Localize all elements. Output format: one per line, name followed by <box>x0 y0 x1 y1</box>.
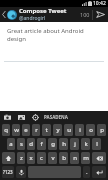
staticText: i <box>79 126 81 134</box>
button[interactable]: p <box>97 124 106 136</box>
button[interactable]: Backspace <box>92 152 106 164</box>
button[interactable]: g <box>48 138 57 150</box>
staticText: . <box>86 168 88 176</box>
staticText: c <box>40 154 43 162</box>
button[interactable]: o <box>86 124 95 136</box>
staticText: Compose Tweet <box>19 7 67 15</box>
button[interactable]: Attach photo <box>3 113 12 122</box>
button[interactable]: i <box>75 124 84 136</box>
button[interactable]: Shift <box>2 152 15 164</box>
button[interactable]: b <box>59 152 68 164</box>
staticText: t <box>45 126 48 134</box>
button[interactable]: c <box>37 152 46 164</box>
button[interactable]: t <box>42 124 51 136</box>
button[interactable]: . <box>83 166 90 178</box>
staticText: a <box>9 140 13 148</box>
button[interactable]: Add image <box>17 113 26 122</box>
button[interactable]: y <box>53 124 62 136</box>
staticText: Great article about Android design <box>7 27 103 43</box>
button[interactable]: m <box>81 152 90 164</box>
staticText: k <box>84 140 88 148</box>
staticText: y <box>56 126 60 134</box>
button[interactable]: r <box>32 124 40 136</box>
staticText: 10:42 <box>93 0 106 7</box>
staticText: o <box>89 126 93 134</box>
button[interactable]: Add location <box>31 113 40 122</box>
staticText: @androgirl <box>19 15 46 22</box>
button[interactable]: e <box>22 124 30 136</box>
button[interactable]: v <box>48 152 57 164</box>
button[interactable]: j <box>70 138 79 150</box>
button[interactable]: a <box>7 138 15 150</box>
staticText: q <box>4 126 8 134</box>
button[interactable]: s <box>17 138 25 150</box>
staticText: l <box>96 140 98 148</box>
button[interactable]: k <box>81 138 90 150</box>
staticText: b <box>62 154 66 162</box>
staticText: u <box>67 126 71 134</box>
staticText: x <box>29 154 33 162</box>
button[interactable]: z <box>17 152 25 164</box>
button[interactable]: l <box>92 138 101 150</box>
staticText: j <box>74 140 76 148</box>
button[interactable]: ?123 <box>2 166 14 178</box>
staticText: v <box>51 154 55 162</box>
staticText: r <box>35 126 38 134</box>
button[interactable]: Voice input <box>16 166 26 178</box>
button[interactable]: w <box>12 124 20 136</box>
staticText: g <box>51 140 55 148</box>
staticText: w <box>14 126 19 134</box>
staticText: m <box>83 154 89 162</box>
button[interactable]: h <box>59 138 68 150</box>
button[interactable]: x <box>27 152 35 164</box>
button[interactable]: d <box>27 138 35 150</box>
staticText: PASADENA <box>44 114 68 120</box>
button[interactable]: q <box>2 124 10 136</box>
staticText: h <box>62 140 66 148</box>
button[interactable]: f <box>37 138 46 150</box>
staticText: p <box>100 126 104 134</box>
staticText: ?123 <box>3 169 13 175</box>
button[interactable]: n <box>70 152 79 164</box>
staticText: z <box>20 154 23 162</box>
button[interactable]: Enter <box>92 166 106 178</box>
staticText: e <box>24 126 28 134</box>
button[interactable]: u <box>64 124 73 136</box>
staticText: d <box>29 140 33 148</box>
button[interactable]: Send tweet <box>93 7 108 22</box>
button[interactable]: Navigate up <box>0 7 18 22</box>
staticText: f <box>40 140 43 148</box>
staticText: s <box>20 140 23 148</box>
staticText: n <box>73 154 77 162</box>
staticText: 100 <box>80 11 90 18</box>
